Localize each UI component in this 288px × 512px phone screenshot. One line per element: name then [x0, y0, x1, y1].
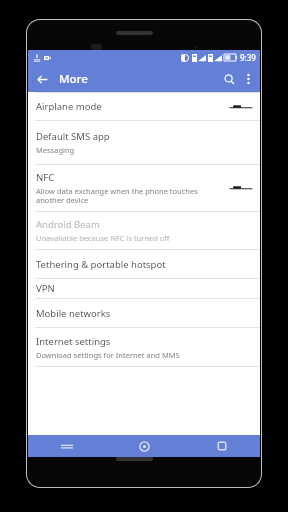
staticText: Default SMS app [36, 130, 110, 143]
staticText: Mobile networks [36, 307, 111, 320]
button[interactable]: NFC [28, 165, 260, 211]
staticText: Airplane mode [36, 100, 102, 113]
button[interactable]: Android Beam [28, 212, 260, 249]
staticText: Allow data exchange when the phone touch… [36, 186, 198, 206]
button[interactable]: Navigate up [32, 69, 52, 89]
button[interactable]: Recent apps [28, 435, 106, 457]
button[interactable]: More options [239, 70, 257, 88]
button[interactable]: Toggle NFC [228, 181, 254, 195]
button[interactable]: Tethering & portable hotspot [28, 250, 260, 278]
button[interactable]: Internet settings [28, 328, 260, 366]
button[interactable]: Toggle Airplane mode [228, 100, 254, 114]
staticText: Tethering & portable hotspot [36, 258, 166, 271]
button[interactable]: Airplane mode [28, 93, 260, 120]
staticText: Android Beam [36, 218, 100, 231]
staticText: More [59, 71, 88, 87]
staticText: VPN [36, 282, 55, 295]
button[interactable]: Back [183, 435, 260, 457]
button[interactable]: Search [219, 69, 239, 89]
staticText: NFC [36, 171, 55, 184]
staticText: Messaging [36, 145, 75, 155]
button[interactable]: Default SMS app [28, 121, 260, 164]
button[interactable]: Mobile networks [28, 299, 260, 327]
staticText: Internet settings [36, 335, 111, 348]
button[interactable]: VPN [28, 279, 260, 298]
button[interactable]: Home [106, 435, 183, 457]
staticText: Download settings for Internet and MMS [36, 350, 180, 360]
staticText: 9:39 [240, 52, 256, 63]
staticText: Unavailable because NFC is turned off [36, 233, 170, 243]
